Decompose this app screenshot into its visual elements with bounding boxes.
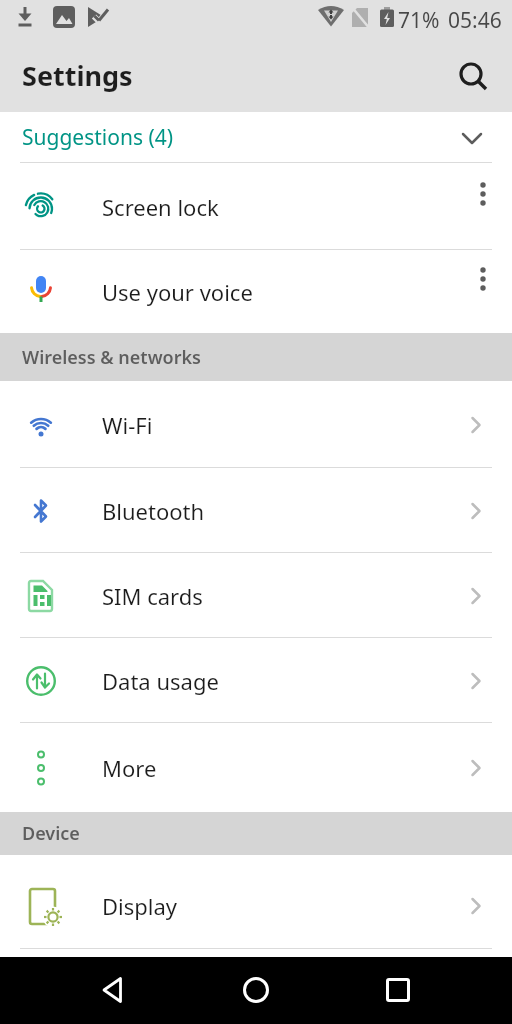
- staticText: 71%: [398, 6, 440, 35]
- staticText: Use your voice: [102, 277, 253, 307]
- button[interactable]: More: [0, 723, 512, 812]
- staticText: Bluetooth: [102, 496, 205, 526]
- button[interactable]: Bluetooth: [0, 468, 512, 553]
- button[interactable]: Data usage: [0, 638, 512, 723]
- staticText: Wireless & networks: [22, 345, 201, 370]
- staticText: SIM cards: [102, 581, 203, 611]
- button[interactable]: [99, 975, 129, 1005]
- button[interactable]: Screen lock: [0, 163, 512, 250]
- staticText: 05:46: [448, 6, 502, 35]
- button[interactable]: Suggestions (4): [0, 112, 512, 163]
- staticText: Screen lock: [102, 192, 219, 222]
- button[interactable]: [383, 975, 413, 1005]
- staticText: More: [102, 753, 157, 783]
- staticText: Wi-Fi: [102, 410, 153, 440]
- staticText: Display: [102, 891, 178, 921]
- staticText: Device: [22, 821, 80, 846]
- button[interactable]: Wi-Fi: [0, 381, 512, 468]
- button[interactable]: Display: [0, 855, 512, 949]
- staticText: Data usage: [102, 666, 219, 696]
- button[interactable]: SIM cards: [0, 553, 512, 638]
- button[interactable]: [459, 62, 489, 92]
- button[interactable]: Use your voice: [0, 250, 512, 333]
- staticText: Settings: [22, 57, 133, 94]
- button[interactable]: [241, 975, 271, 1005]
- staticText: Suggestions (4): [22, 123, 174, 152]
